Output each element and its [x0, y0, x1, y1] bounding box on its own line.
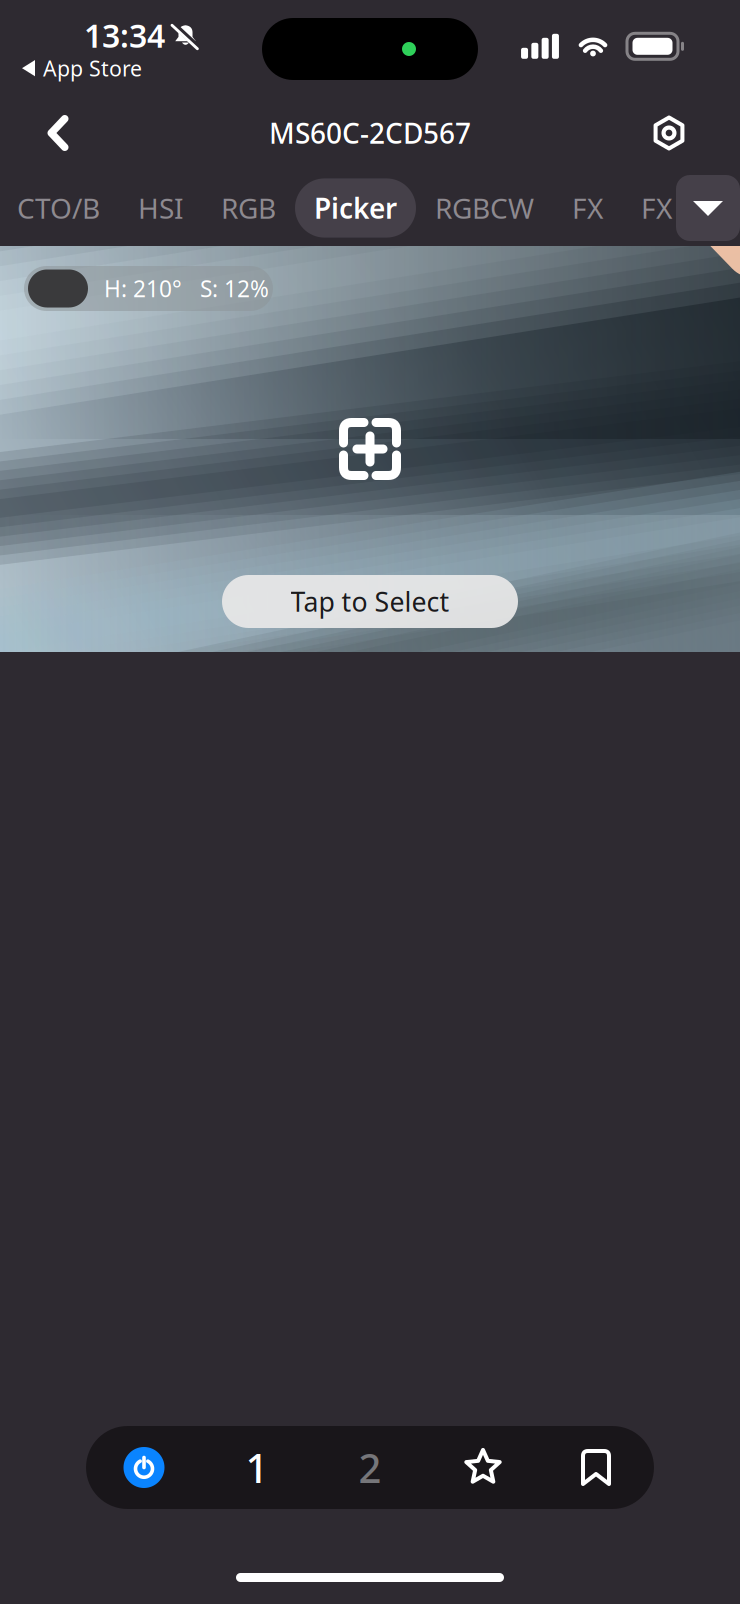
staticText: RGB: [221, 189, 276, 227]
button[interactable]: Settings: [598, 96, 740, 170]
staticText: HSI: [138, 189, 183, 227]
staticText: RGBCW: [435, 189, 534, 227]
staticText: Tap to Select: [290, 584, 449, 619]
button[interactable]: More tabs: [676, 175, 740, 241]
staticText: H: 210°: [104, 273, 182, 303]
staticText: MS60C-2CD567: [269, 114, 471, 152]
button[interactable]: 1: [200, 1426, 313, 1509]
staticText: 13:34: [84, 14, 165, 56]
staticText: CTO/B: [17, 189, 100, 227]
button[interactable]: Favourite: [426, 1426, 539, 1509]
staticText: App Store: [43, 54, 142, 82]
staticText: FX Pi: [641, 189, 703, 227]
staticText: Picker: [314, 189, 397, 227]
button[interactable]: RGB: [202, 178, 295, 238]
button[interactable]: Back: [0, 96, 116, 170]
button[interactable]: Tap to Select: [222, 575, 518, 628]
button[interactable]: CTO/B: [0, 178, 119, 238]
button[interactable]: Bookmark: [539, 1426, 652, 1509]
button[interactable]: FX: [553, 178, 622, 238]
staticText: S: 12%: [200, 273, 269, 303]
button[interactable]: 2: [313, 1426, 426, 1509]
button[interactable]: Picker: [295, 178, 416, 238]
button[interactable]: RGBCW: [416, 178, 553, 238]
staticText: FX: [572, 189, 603, 227]
button[interactable]: HSI: [119, 178, 202, 238]
button[interactable]: FX Pi: [622, 178, 722, 238]
staticText: 1: [245, 1441, 268, 1494]
staticText: 2: [358, 1441, 381, 1494]
button[interactable]: Power: [87, 1426, 200, 1509]
